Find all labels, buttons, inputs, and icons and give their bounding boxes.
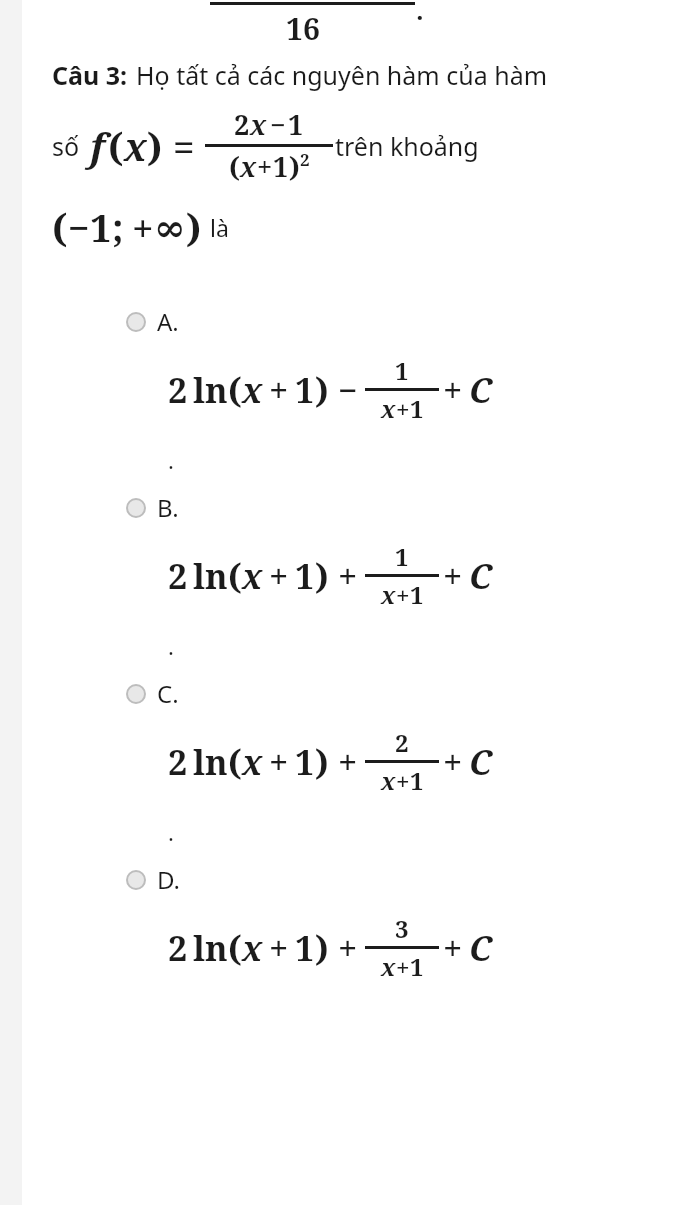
staticText: C: [469, 739, 492, 785]
staticText: 2: [395, 726, 409, 759]
staticText: +: [269, 553, 289, 599]
staticText: 1: [295, 739, 315, 785]
staticText: −: [68, 201, 90, 253]
staticText: .: [416, 0, 424, 27]
staticText: .: [168, 445, 174, 475]
staticText: C.: [157, 677, 179, 710]
staticText: (: [52, 201, 68, 253]
staticText: .: [168, 817, 174, 847]
staticText: ): [289, 148, 300, 185]
other: Select option B: [126, 498, 146, 518]
staticText: f: [90, 120, 106, 172]
staticText: 16: [286, 8, 320, 49]
staticText: x: [242, 739, 263, 785]
staticText: ln: [193, 925, 228, 971]
staticText: 1: [410, 764, 424, 797]
staticText: x: [240, 148, 257, 185]
staticText: +: [396, 578, 410, 611]
staticText: x: [381, 950, 396, 983]
staticText: +: [338, 925, 358, 971]
staticText: +: [132, 201, 154, 253]
staticText: =: [173, 120, 195, 172]
staticText: +: [396, 392, 410, 425]
staticText: ∞: [154, 205, 186, 250]
staticText: A.: [157, 305, 179, 338]
staticText: −: [270, 106, 286, 143]
staticText: +: [269, 925, 289, 971]
staticText: (: [228, 553, 242, 599]
staticText: ): [315, 925, 329, 971]
staticText: .: [168, 631, 174, 661]
staticText: 2: [168, 367, 188, 413]
other: Select option D: [126, 870, 146, 890]
staticText: +: [269, 739, 289, 785]
staticText: Họ tất cả các nguyên hàm của hàm: [136, 58, 548, 92]
other: Select option C: [126, 684, 146, 704]
staticText: số: [52, 129, 80, 163]
staticText: x: [242, 553, 263, 599]
button[interactable]: Select option D: [0, 863, 693, 983]
staticText: −: [338, 367, 358, 413]
staticText: 1: [295, 367, 315, 413]
staticText: ): [315, 367, 329, 413]
staticText: 1: [395, 354, 409, 387]
staticText: ): [186, 201, 202, 253]
staticText: C: [469, 553, 492, 599]
staticText: 3: [395, 912, 409, 945]
staticText: (: [228, 739, 242, 785]
staticText: C: [469, 367, 492, 413]
staticText: ): [315, 739, 329, 785]
button[interactable]: Select option A: [0, 305, 693, 475]
staticText: x: [124, 120, 147, 172]
staticText: 2: [168, 925, 188, 971]
staticText: 1: [295, 553, 315, 599]
staticText: +: [443, 553, 463, 599]
staticText: 1: [273, 148, 289, 185]
staticText: (: [108, 120, 124, 172]
staticText: ln: [193, 367, 228, 413]
staticText: ;: [112, 201, 124, 253]
staticText: (: [228, 367, 242, 413]
staticText: +: [396, 950, 410, 983]
staticText: ln: [193, 739, 228, 785]
staticText: D.: [157, 863, 180, 896]
staticText: ln: [193, 553, 228, 599]
staticText: 2: [234, 106, 250, 143]
staticText: +: [443, 739, 463, 785]
staticText: ): [315, 553, 329, 599]
staticText: (: [229, 148, 240, 185]
button[interactable]: Select option B: [0, 491, 693, 661]
staticText: 1: [410, 950, 424, 983]
staticText: C: [469, 925, 492, 971]
staticText: 2: [168, 739, 188, 785]
staticText: ): [147, 120, 163, 172]
staticText: 1: [295, 925, 315, 971]
staticText: +: [257, 148, 273, 185]
staticText: x: [381, 764, 396, 797]
staticText: +: [338, 739, 358, 785]
staticText: x: [242, 925, 263, 971]
staticText: 2: [168, 553, 188, 599]
staticText: 1: [410, 392, 424, 425]
staticText: +: [396, 764, 410, 797]
staticText: 1: [395, 540, 409, 573]
staticText: x: [242, 367, 263, 413]
staticText: +: [269, 367, 289, 413]
staticText: 1: [90, 201, 112, 253]
staticText: x: [381, 392, 396, 425]
staticText: +: [443, 367, 463, 413]
other: Select option A: [126, 312, 146, 332]
staticText: Câu 3:: [52, 58, 128, 92]
staticText: là: [210, 212, 229, 243]
button[interactable]: Select option C: [0, 677, 693, 847]
staticText: (: [228, 925, 242, 971]
staticText: B.: [157, 491, 179, 524]
staticText: 1: [288, 106, 304, 143]
staticText: trên khoảng: [335, 129, 479, 163]
staticText: 1: [410, 578, 424, 611]
staticText: +: [443, 925, 463, 971]
staticText: 2: [300, 148, 310, 171]
staticText: x: [381, 578, 396, 611]
staticText: +: [338, 553, 358, 599]
staticText: x: [250, 106, 267, 143]
